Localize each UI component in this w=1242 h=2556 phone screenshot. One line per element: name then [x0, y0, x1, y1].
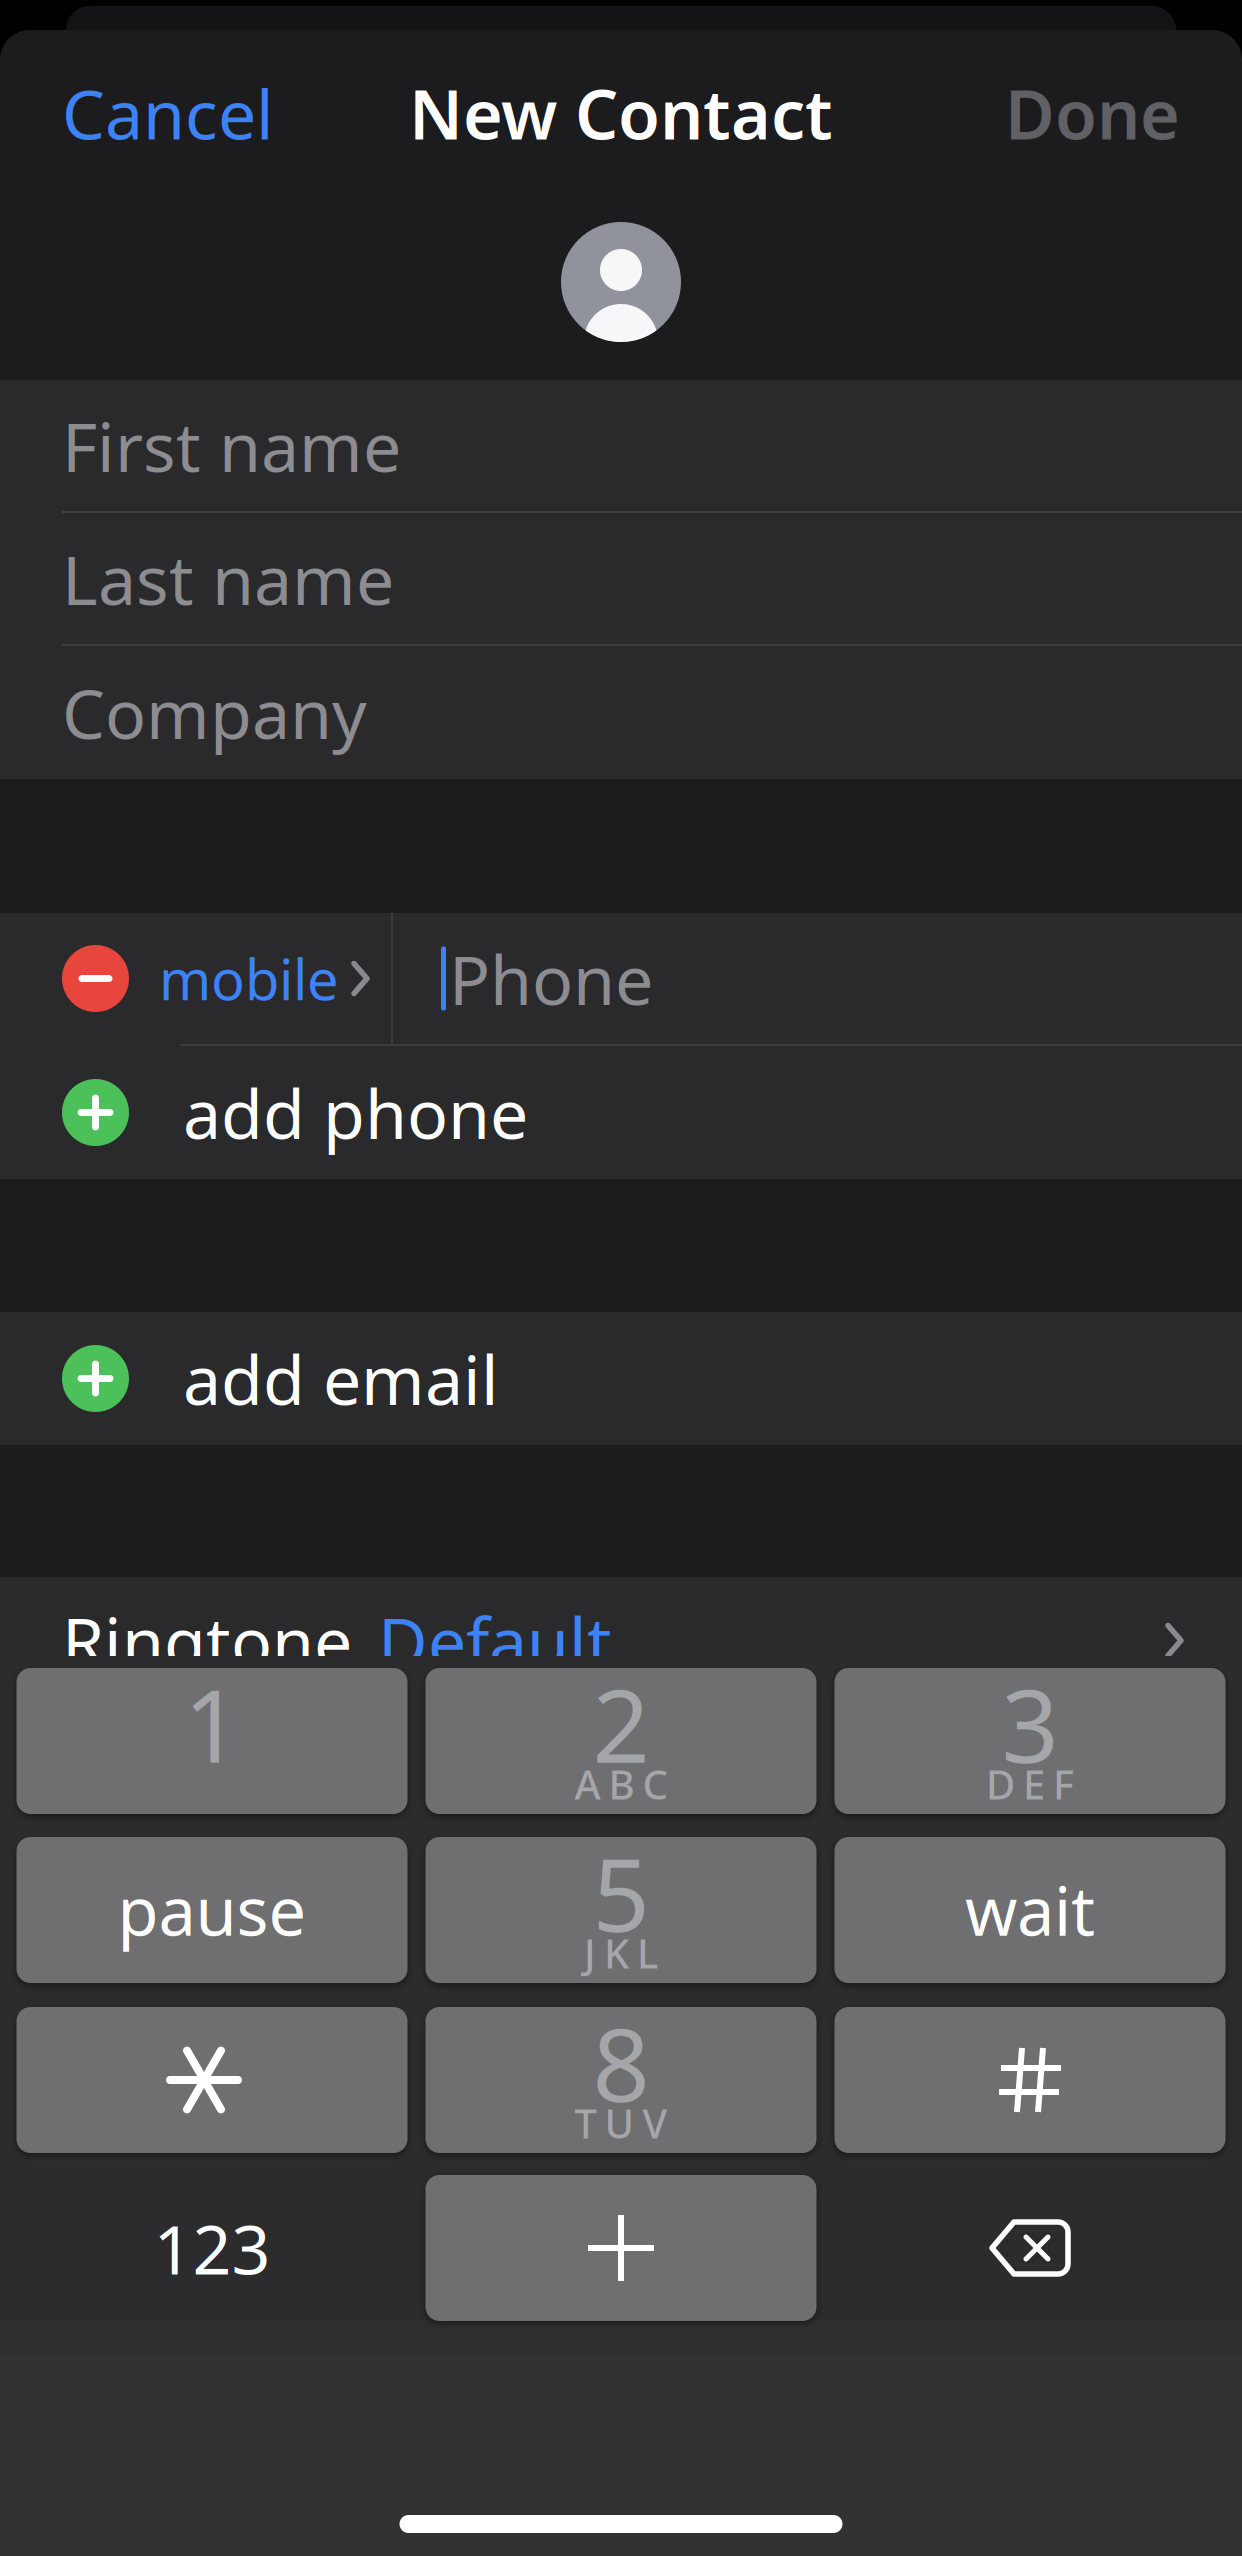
staticText: DEF: [986, 1757, 1074, 1810]
staticText: JKL: [584, 1926, 658, 1979]
staticText: add phone: [183, 1067, 528, 1158]
staticText: 1: [183, 1658, 240, 1790]
staticText: New Contact: [409, 68, 833, 158]
staticText: 2: [592, 1658, 649, 1790]
staticText: Done: [1005, 68, 1180, 158]
staticText: Last name: [62, 533, 394, 624]
staticText: [207, 1757, 217, 1810]
staticText: 5: [592, 1827, 649, 1959]
staticText: 3: [1001, 1658, 1058, 1790]
staticText: 8: [592, 1997, 649, 2129]
staticText: First name: [62, 400, 401, 491]
staticText: pause: [117, 1866, 306, 1954]
staticText: Default: [378, 1595, 612, 1686]
staticText: TUV: [574, 2096, 667, 2149]
staticText: add email: [183, 1333, 499, 1424]
staticText: wait: [965, 1866, 1095, 1954]
staticText: ABC: [574, 1757, 667, 1810]
staticText: Phone: [449, 933, 653, 1024]
staticText: mobile: [159, 941, 339, 1016]
staticText: Cancel: [62, 68, 274, 158]
staticText: Ringtone: [62, 1595, 352, 1686]
staticText: 123: [153, 2203, 270, 2293]
staticText: Company: [62, 667, 367, 758]
